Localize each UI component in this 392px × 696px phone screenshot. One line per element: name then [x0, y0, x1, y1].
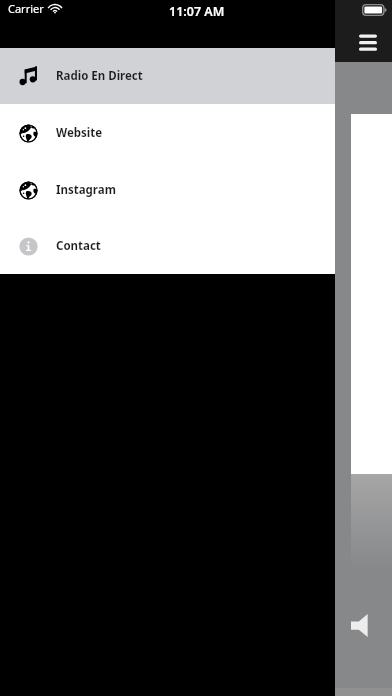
- button[interactable]: Contact: [0, 218, 335, 274]
- button[interactable]: Open navigation menu: [352, 26, 384, 58]
- staticText: Contact: [56, 238, 101, 254]
- button[interactable]: Instagram: [0, 161, 335, 218]
- staticText: Carrier: [8, 1, 44, 16]
- button[interactable]: Close navigation menu: [335, 0, 392, 696]
- staticText: 11:07 AM: [169, 3, 225, 20]
- staticText: Website: [56, 125, 103, 141]
- staticText: Instagram: [56, 182, 116, 198]
- button[interactable]: Volume: [344, 606, 374, 644]
- button[interactable]: Radio En Direct: [0, 48, 335, 104]
- staticText: Radio En Direct: [56, 68, 143, 84]
- button[interactable]: Website: [0, 104, 335, 161]
